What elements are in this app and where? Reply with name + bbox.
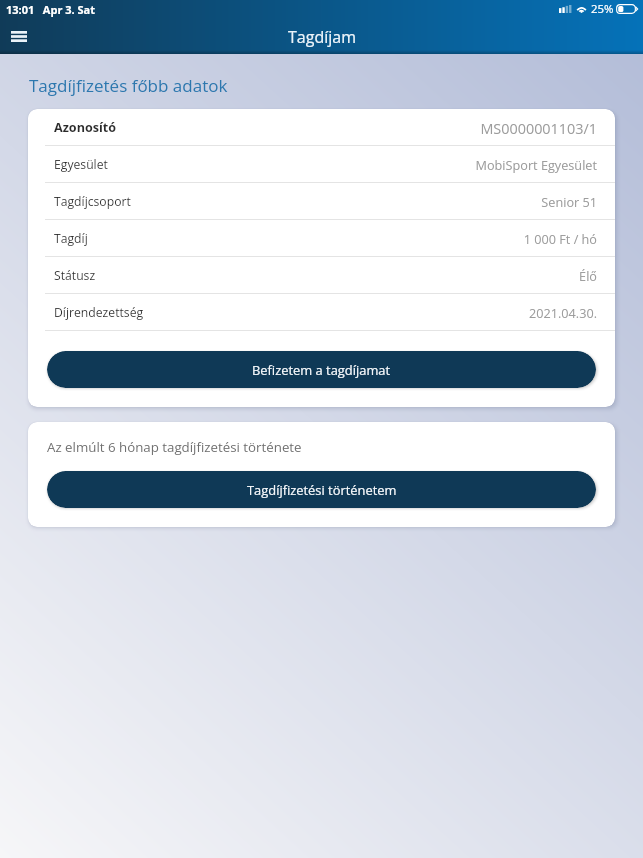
staticText: Státusz	[54, 267, 96, 284]
staticText: Senior 51	[139, 193, 597, 210]
button[interactable]: Tagdíj	[28, 220, 615, 256]
staticText: 2021.04.30.	[152, 304, 597, 321]
staticText: Tagdíjcsoport	[54, 193, 131, 210]
button[interactable]: Egyesület	[28, 146, 615, 182]
button[interactable]: Tagdíjfizetési történetem	[47, 471, 596, 508]
staticText: Befizetem a tagdíjamat	[252, 361, 391, 379]
staticText: Tagdíjam	[288, 26, 356, 48]
button[interactable]: Open navigation menu	[1, 19, 37, 55]
staticText: 1 000 Ft / hó	[96, 230, 597, 247]
staticText: Élő	[104, 267, 597, 284]
button[interactable]: Befizetem a tagdíjamat	[47, 351, 596, 388]
button[interactable]: Díjrendezettség	[28, 294, 615, 330]
button[interactable]: Azonosító	[28, 109, 615, 145]
staticText: Azonosító	[54, 119, 117, 136]
staticText: Tagdíjfizetési történetem	[247, 481, 397, 499]
staticText: MS0000001103/1	[125, 119, 597, 139]
staticText: Tagdíjfizetés főbb adatok	[29, 74, 228, 97]
button[interactable]: Státusz	[28, 257, 615, 293]
staticText: 13:01 Apr 3. Sat	[6, 2, 96, 17]
button[interactable]: Tagdíjcsoport	[28, 183, 615, 219]
staticText: MobiSport Egyesület	[116, 156, 597, 173]
staticText: Az elmúlt 6 hónap tagdíjfizetési történe…	[47, 438, 302, 456]
staticText: Tagdíj	[54, 230, 88, 247]
staticText: Egyesület	[54, 156, 108, 173]
staticText: Díjrendezettség	[54, 304, 144, 321]
staticText: 25%	[591, 1, 614, 17]
